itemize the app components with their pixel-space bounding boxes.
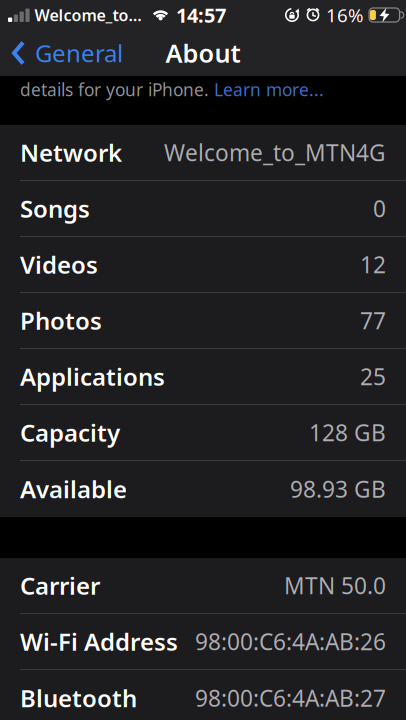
staticText: General xyxy=(35,37,123,69)
staticText: Carrier xyxy=(20,570,100,601)
staticText: Network xyxy=(20,137,122,168)
staticText: details for your iPhone. xyxy=(20,78,214,101)
staticText: Welcome_to_MTN4G xyxy=(164,137,386,167)
staticText: 128 GB xyxy=(309,417,386,447)
staticText: Wi-Fi Address xyxy=(20,626,178,657)
staticText: Photos xyxy=(20,305,102,336)
staticText: MTN 50.0 xyxy=(284,570,386,600)
staticText: 98:00:C6:4A:AB:27 xyxy=(195,683,386,713)
staticText: About xyxy=(165,36,240,70)
staticText: 0 xyxy=(373,193,386,223)
staticText: 12 xyxy=(360,249,386,279)
button[interactable]: Learn more... xyxy=(214,78,324,101)
button[interactable]: Back to General xyxy=(0,30,131,76)
staticText: Learn more... xyxy=(214,78,324,101)
staticText: 98:00:C6:4A:AB:26 xyxy=(195,626,386,656)
staticText: Welcome_to_MTN4G xyxy=(35,4,145,26)
staticText: Applications xyxy=(20,361,165,392)
staticText: Videos xyxy=(20,249,98,280)
staticText: 16% xyxy=(326,3,364,27)
staticText: 77 xyxy=(360,305,386,335)
staticText: Songs xyxy=(20,193,90,224)
staticText: Bluetooth xyxy=(20,682,137,714)
staticText: 98.93 GB xyxy=(290,474,386,504)
staticText: 14:57 xyxy=(176,2,226,28)
staticText: Capacity xyxy=(20,417,120,448)
staticText: 25 xyxy=(360,361,386,391)
staticText: Available xyxy=(20,473,127,505)
